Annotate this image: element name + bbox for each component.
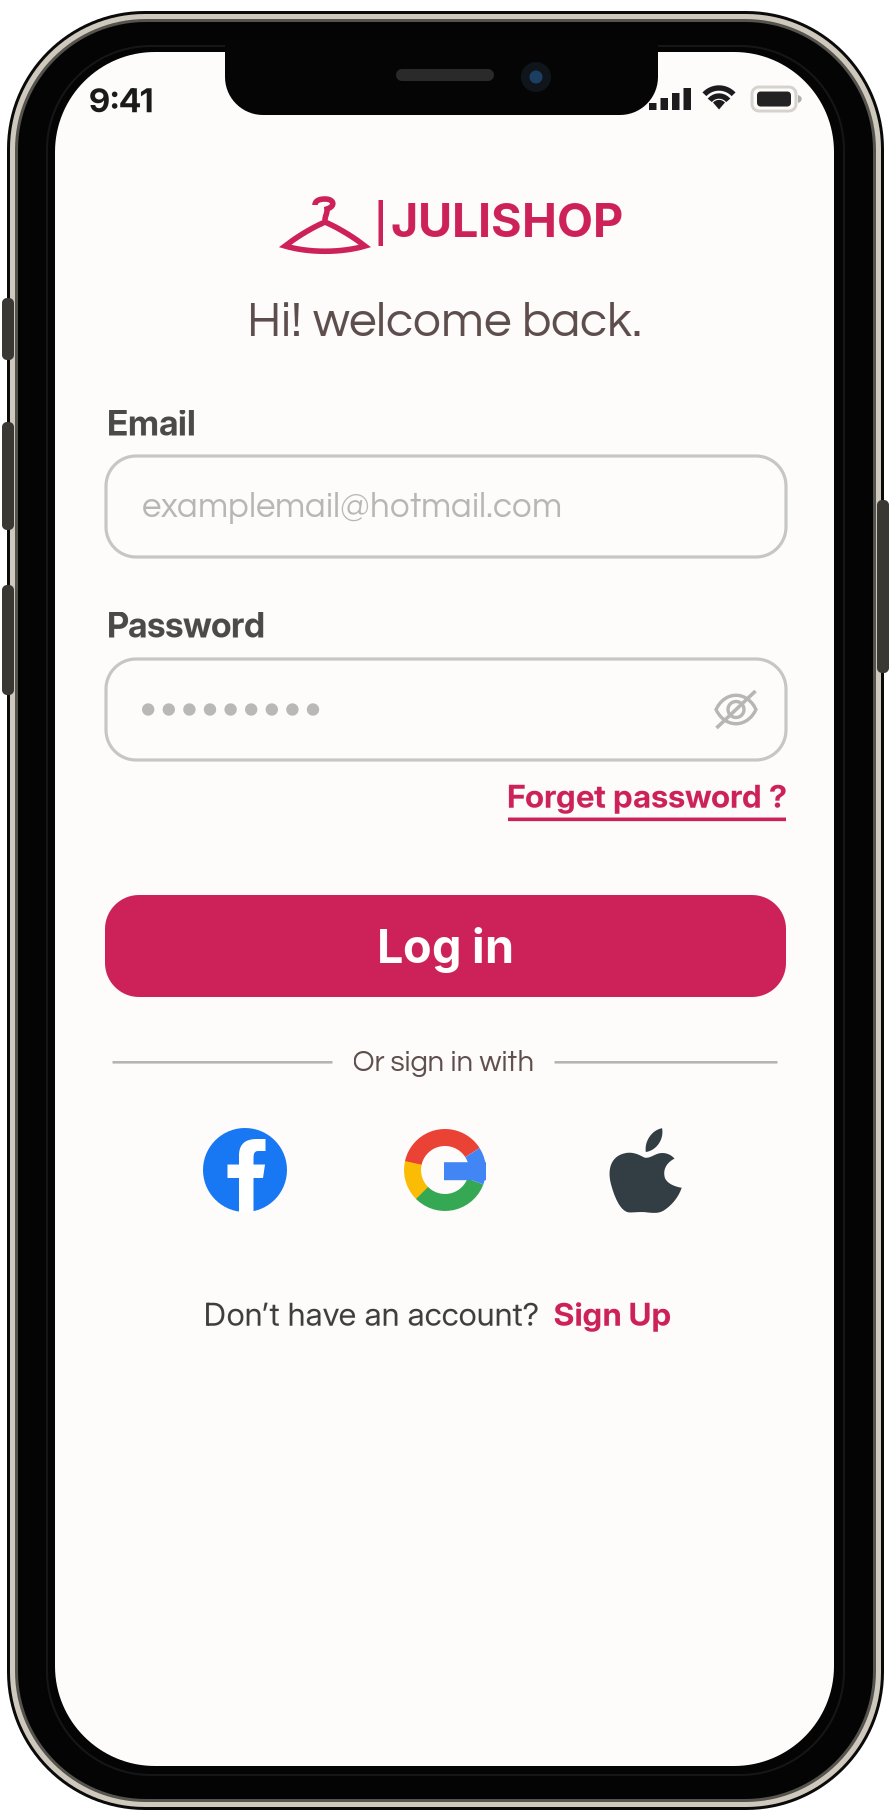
button[interactable]: Sign in with Apple	[603, 1128, 687, 1212]
button[interactable]: Sign in with Google	[403, 1128, 487, 1212]
staticText: Hi! welcome back.	[247, 296, 642, 346]
button[interactable]: Sign Up	[539, 1295, 671, 1333]
staticText: JULISHOP	[391, 192, 623, 248]
staticText: Forget password ?	[507, 777, 787, 815]
button[interactable]: Forget password ?	[508, 774, 786, 824]
staticText: examplemail@hotmail.com	[142, 489, 562, 524]
button[interactable]: Sign in with Facebook	[203, 1128, 287, 1212]
staticText: 9:41	[89, 80, 154, 120]
staticText: Email	[107, 402, 196, 444]
staticText: Sign Up	[539, 1295, 671, 1333]
staticText: Log in	[377, 918, 514, 974]
staticText: Or sign in with	[352, 1047, 534, 1077]
button[interactable]: Log in	[105, 895, 786, 997]
staticText: Don’t have an account?	[203, 1295, 539, 1333]
staticText: Password	[107, 604, 265, 646]
